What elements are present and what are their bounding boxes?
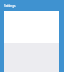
staticText: Settings bbox=[4, 4, 16, 8]
